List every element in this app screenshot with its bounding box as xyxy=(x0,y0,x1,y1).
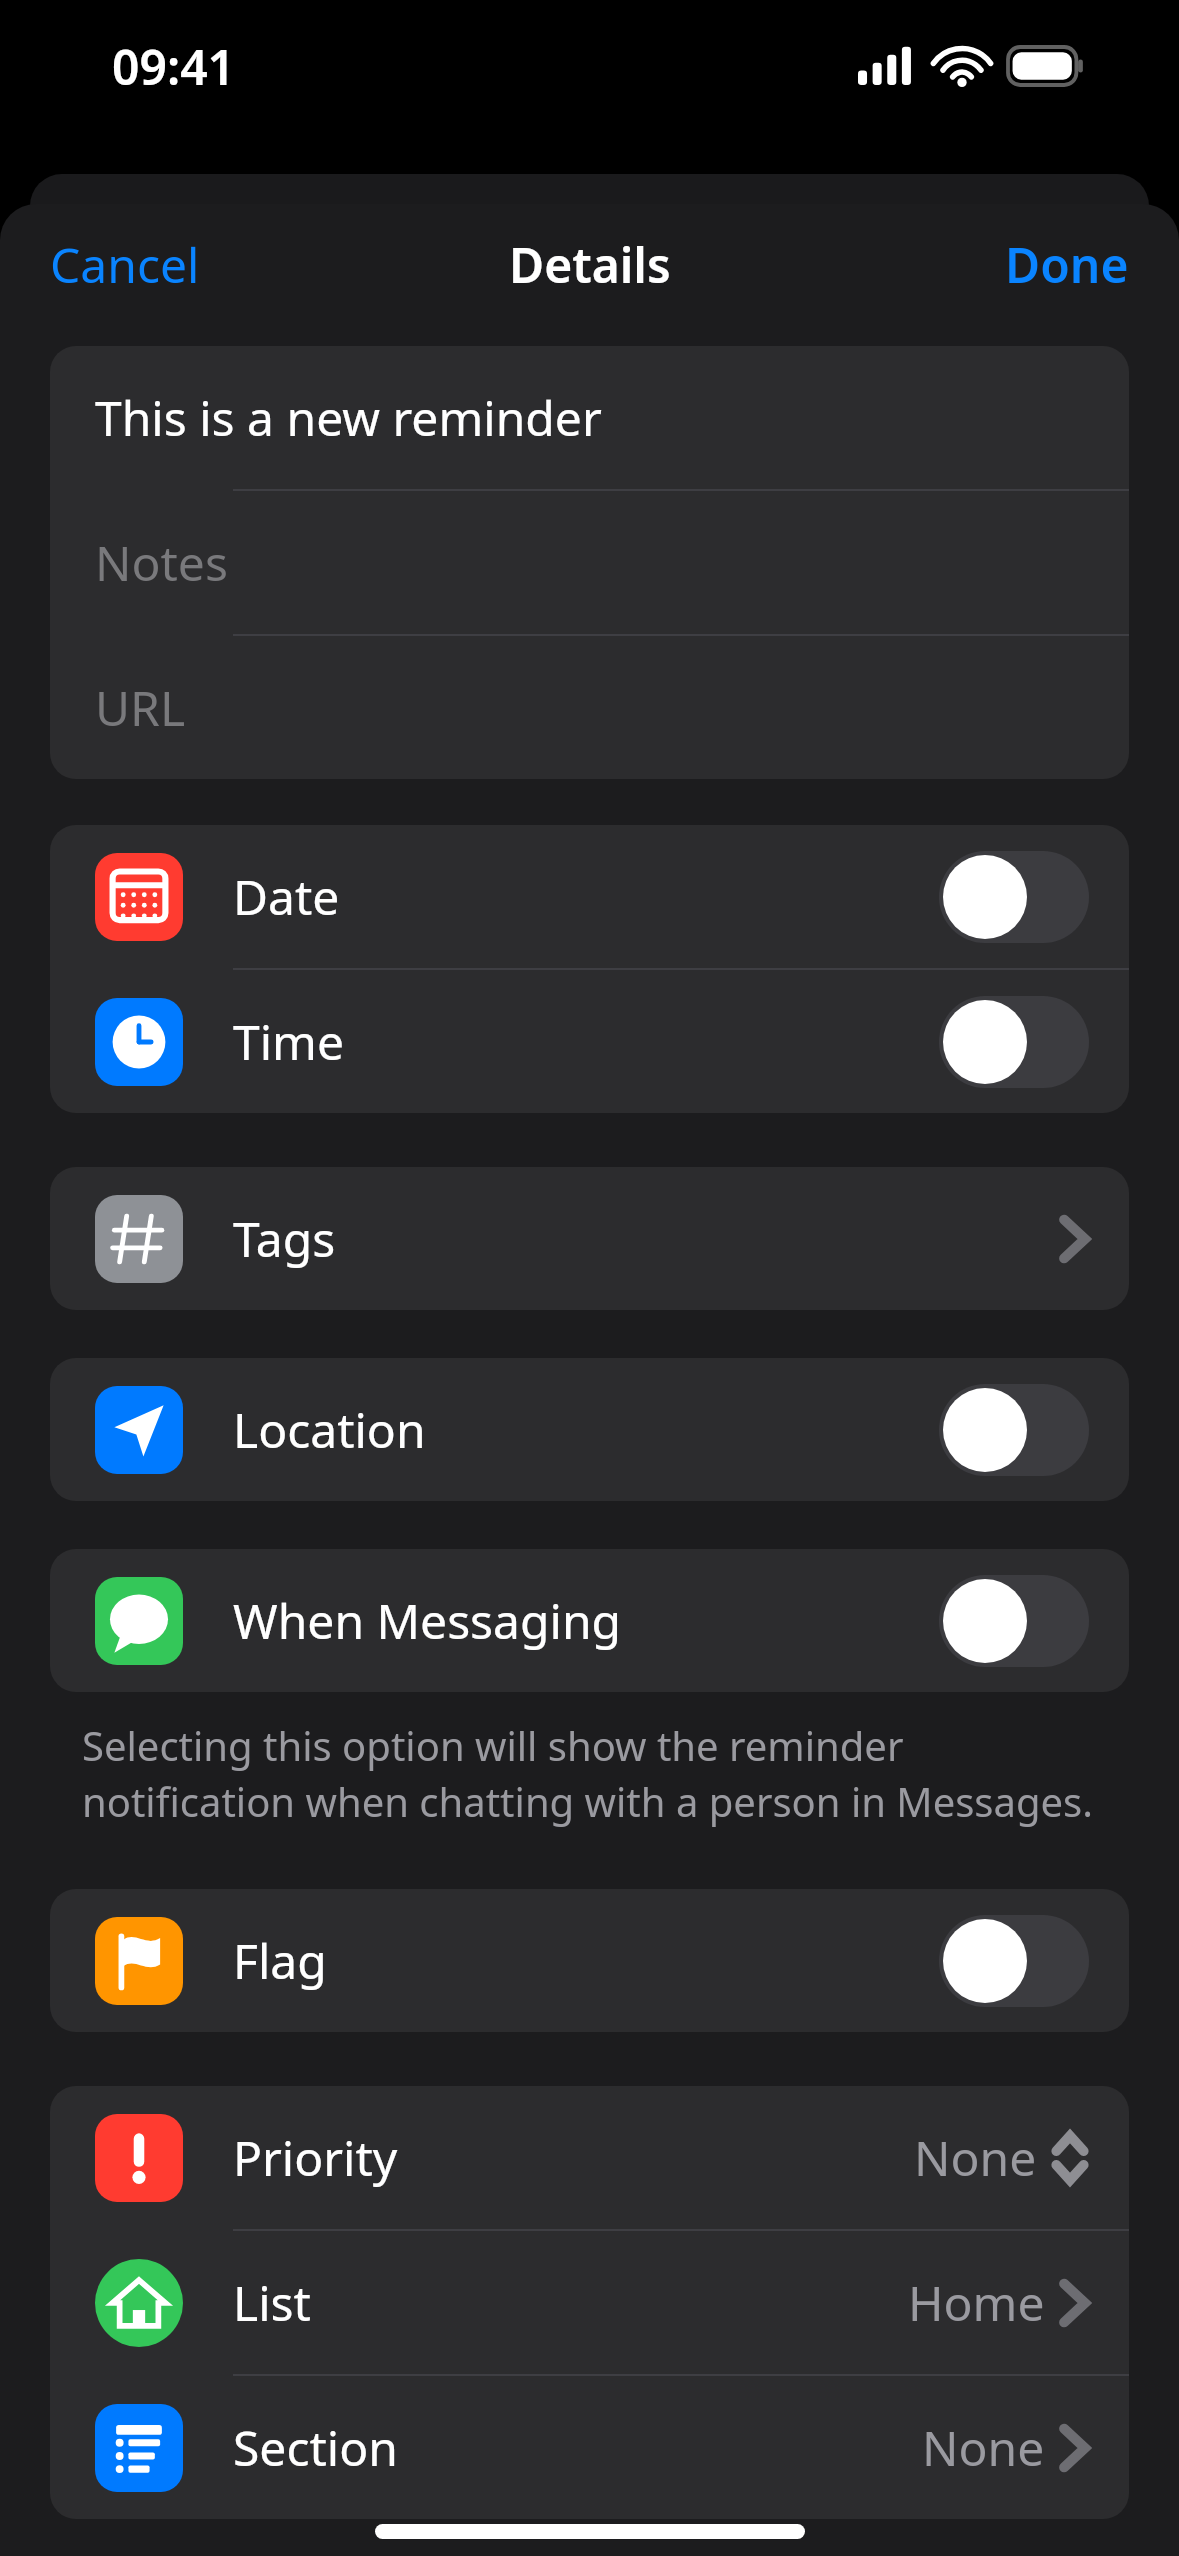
button[interactable]: Location xyxy=(50,1358,1129,1501)
staticText: Home xyxy=(908,2270,1045,2335)
staticText: Time xyxy=(233,1009,345,1074)
button[interactable]: Notes xyxy=(50,491,1129,634)
staticText: None xyxy=(914,2125,1037,2190)
staticText: Cancel xyxy=(50,232,200,297)
button[interactable]: Toggle xyxy=(939,1915,1089,2007)
button[interactable]: Time xyxy=(50,970,1129,1113)
button[interactable]: Section xyxy=(50,2376,1129,2519)
button[interactable]: Date xyxy=(50,825,1129,968)
staticText: Details xyxy=(509,232,671,297)
staticText: Tags xyxy=(233,1206,336,1271)
staticText: Priority xyxy=(233,2125,398,2190)
staticText: None xyxy=(922,2415,1045,2480)
staticText: Section xyxy=(233,2415,398,2480)
staticText: Date xyxy=(233,864,340,929)
staticText: Flag xyxy=(233,1928,327,1993)
button[interactable]: Toggle xyxy=(939,1575,1089,1667)
staticText: Done xyxy=(1005,232,1129,297)
staticText: URL xyxy=(95,675,186,740)
staticText: This is a new reminder xyxy=(95,385,602,450)
button[interactable]: List xyxy=(50,2231,1129,2374)
button[interactable]: Priority xyxy=(50,2086,1129,2229)
button[interactable]: Cancel xyxy=(28,218,222,311)
staticText: Selecting this option will show the remi… xyxy=(82,1718,1119,1829)
button[interactable]: Toggle xyxy=(939,996,1089,1088)
staticText: Notes xyxy=(95,530,228,595)
staticText: List xyxy=(233,2270,311,2335)
staticText: 09:41 xyxy=(112,34,236,99)
button[interactable]: Flag xyxy=(50,1889,1129,2032)
staticText: Location xyxy=(233,1397,426,1462)
button[interactable]: Tags xyxy=(50,1167,1129,1310)
button[interactable]: Toggle xyxy=(939,1384,1089,1476)
button[interactable]: Toggle xyxy=(939,851,1089,943)
button[interactable]: URL xyxy=(50,636,1129,779)
button[interactable]: When Messaging xyxy=(50,1549,1129,1692)
button[interactable]: Done xyxy=(983,218,1151,311)
staticText: When Messaging xyxy=(233,1588,622,1653)
button[interactable]: This is a new reminder xyxy=(50,346,1129,489)
